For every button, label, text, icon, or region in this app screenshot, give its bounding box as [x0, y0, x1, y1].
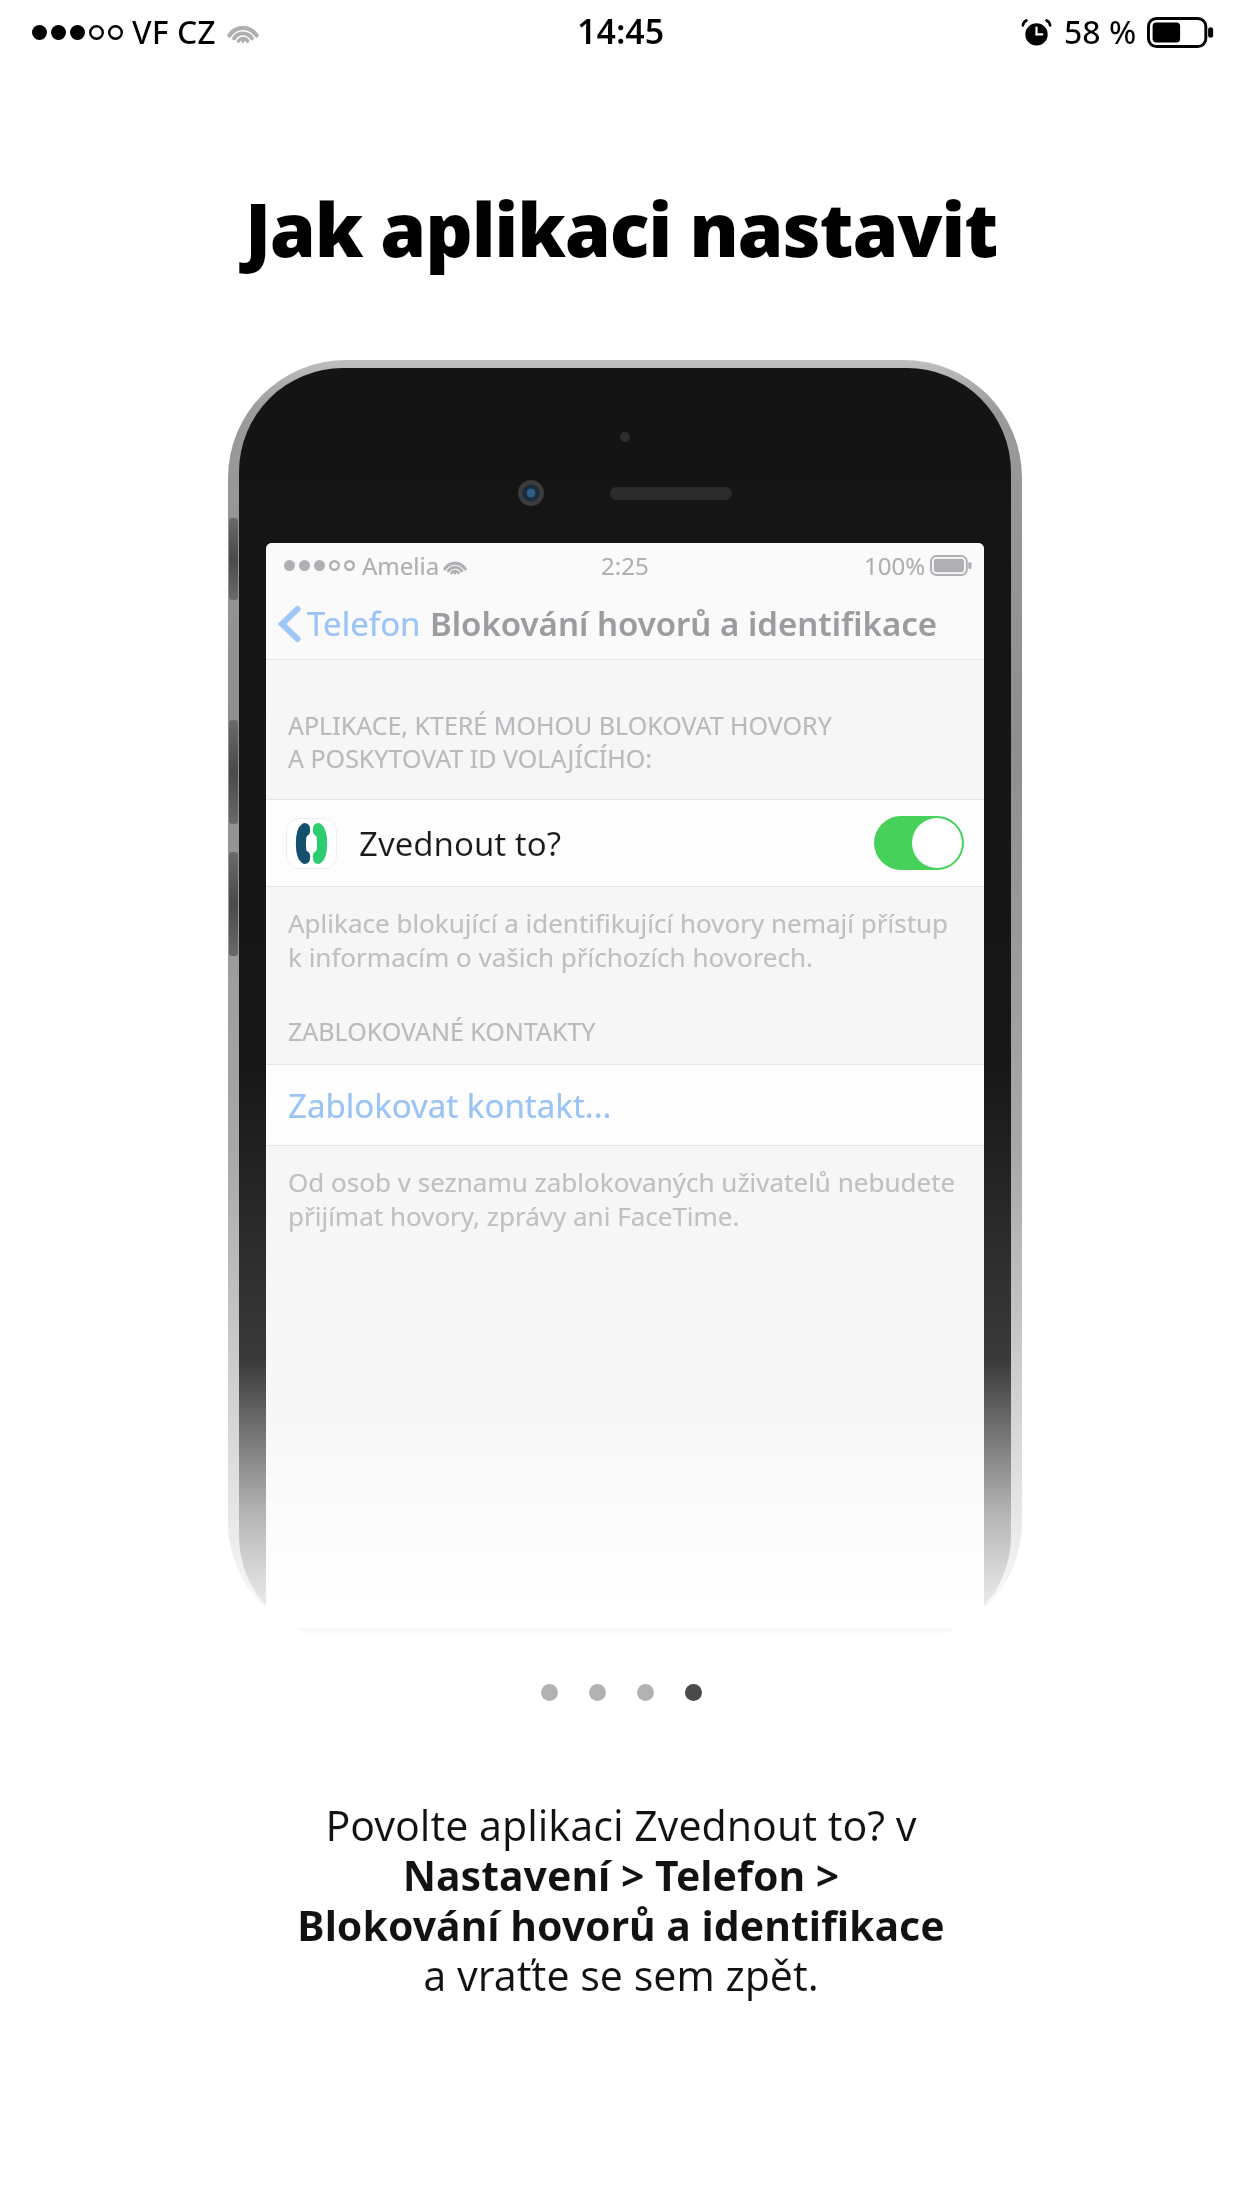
staticText: Blokování hovorů a identifikace	[430, 601, 938, 646]
staticText: 14:45	[577, 8, 665, 54]
button[interactable]: Page 3	[637, 1684, 654, 1701]
staticText: 100%	[864, 549, 926, 582]
button[interactable]: Zvednout to? zapnuto	[874, 816, 964, 870]
staticText: VF CZ	[132, 10, 216, 54]
staticText: ZABLOKOVANÉ KONTAKTY	[288, 1014, 596, 1048]
staticText: Zvednout to?	[359, 821, 561, 866]
staticText: Telefon	[307, 601, 421, 646]
staticText: Amelia	[362, 549, 440, 582]
staticText: Od osob v seznamu zablokovaných uživatel…	[288, 1164, 956, 1233]
staticText: 2:25	[601, 549, 649, 582]
staticText: 58 %	[1064, 10, 1137, 54]
button[interactable]: Zablokovat kontakt...	[266, 1065, 984, 1145]
staticText: APLIKACE, KTERÉ MOHOU BLOKOVAT HOVORY A …	[288, 708, 832, 775]
button[interactable]: Back to Telefon	[266, 595, 427, 652]
staticText: Aplikace blokující a identifikující hovo…	[288, 905, 949, 974]
button[interactable]: Page 1	[541, 1684, 558, 1701]
button[interactable]: Page 4	[685, 1684, 702, 1701]
staticText: Povolte aplikaci Zvednout to? v Nastaven…	[297, 1797, 945, 2003]
button[interactable]: Page 2	[589, 1684, 606, 1701]
staticText: Jak aplikaci nastavit	[245, 178, 998, 279]
staticText: Zablokovat kontakt...	[288, 1083, 612, 1128]
button[interactable]: Zvednout to?	[266, 800, 984, 886]
